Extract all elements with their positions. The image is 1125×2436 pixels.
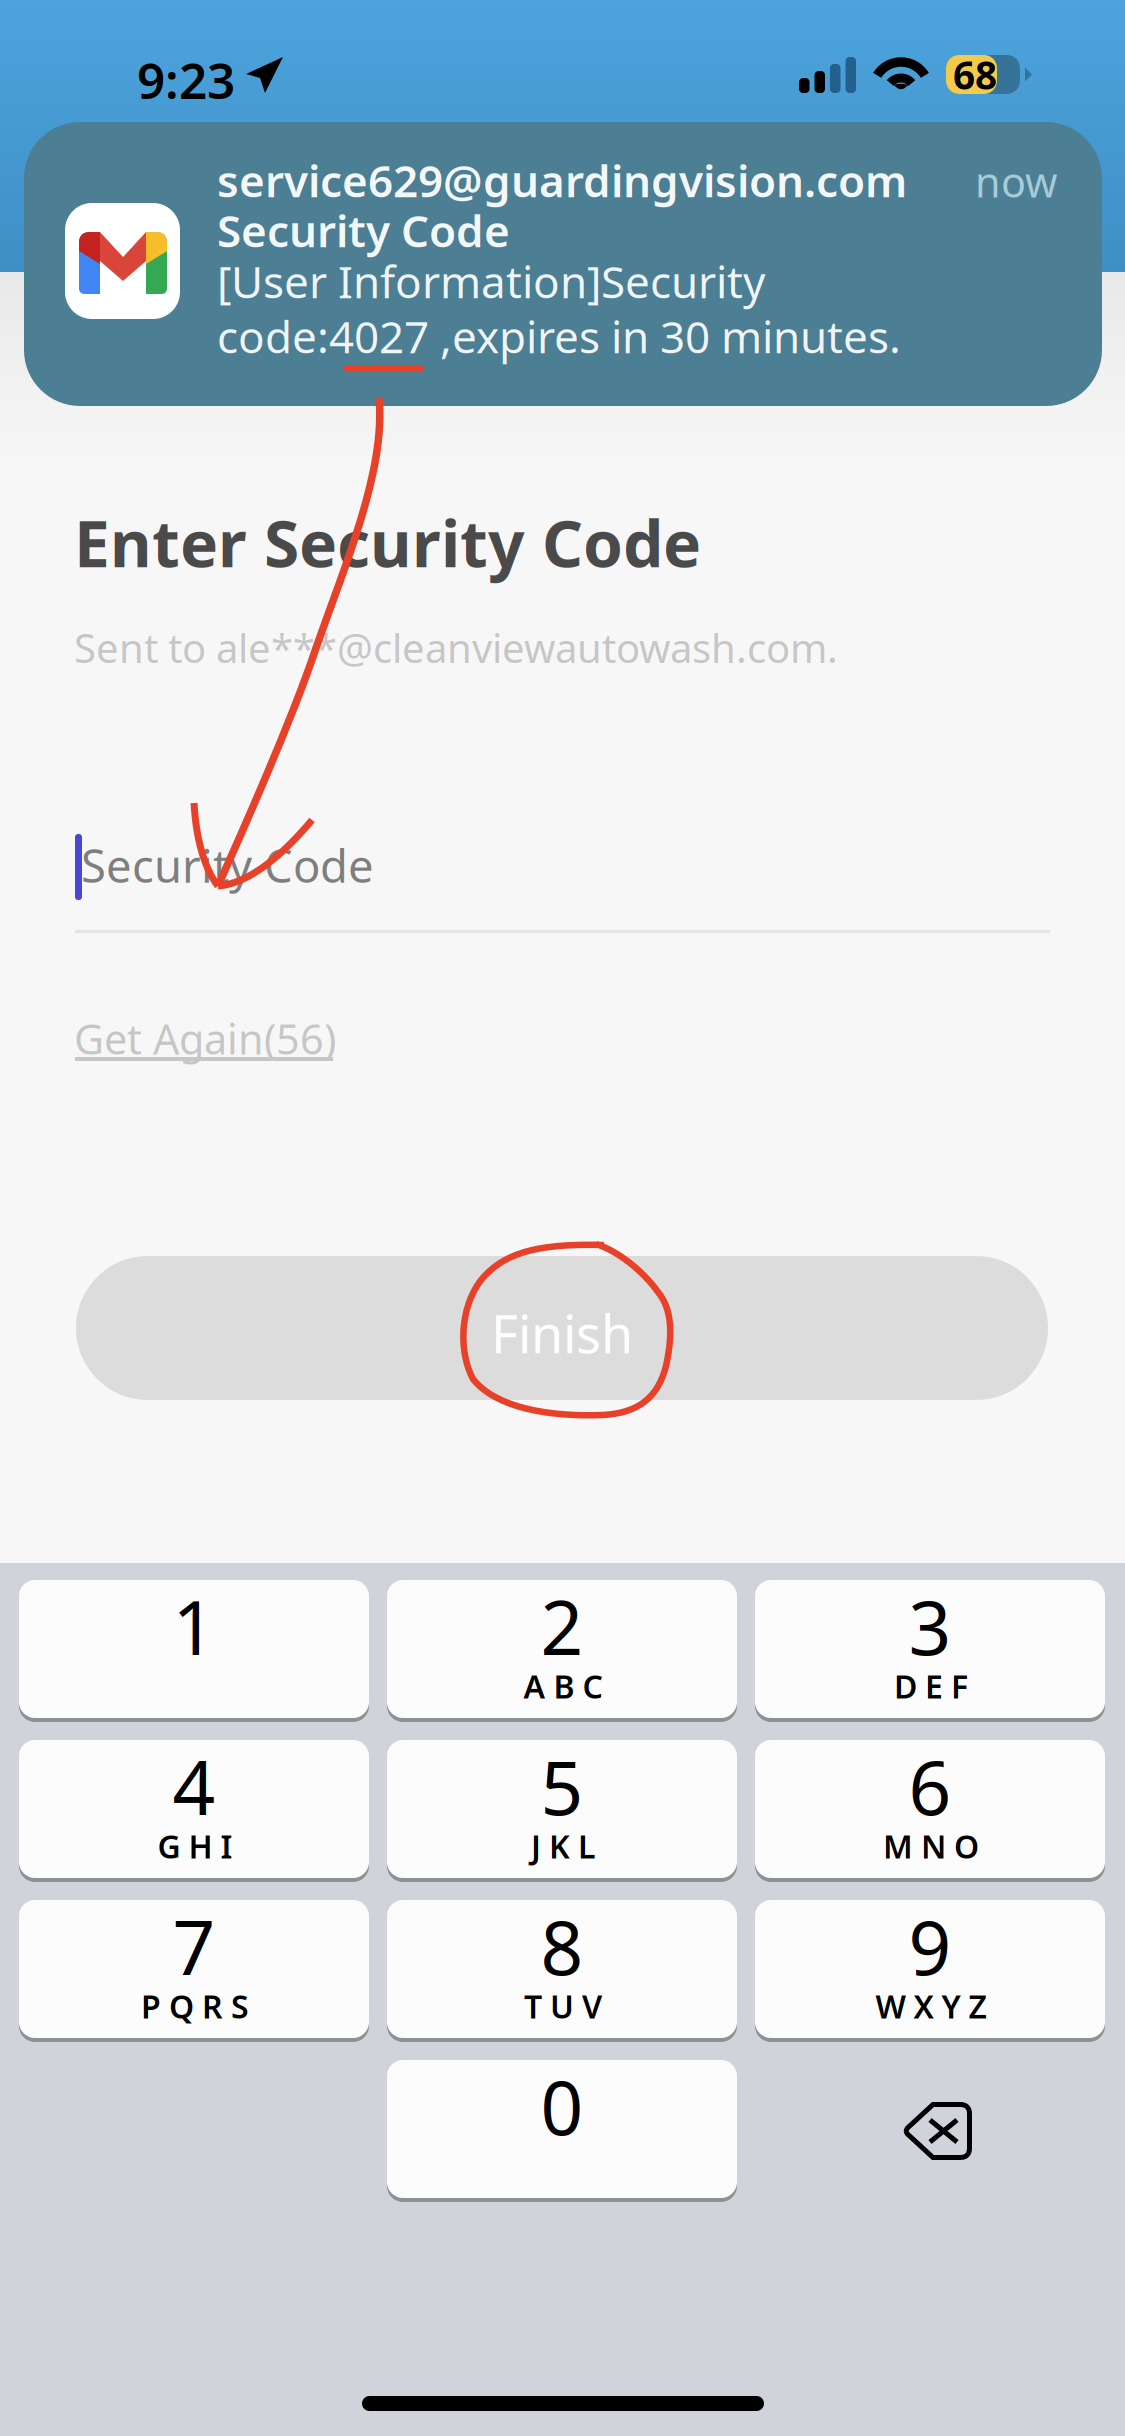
staticText: 4	[172, 1736, 215, 1836]
staticText: JKL	[531, 1825, 595, 1867]
button[interactable]: Mail notification from service629@guardi…	[24, 122, 1102, 406]
staticText: 9	[908, 1896, 951, 1996]
staticText: Security Code	[217, 201, 510, 259]
staticText: service629@guardingvision.com	[217, 151, 907, 209]
staticText: code:4027 ,expires in 30 minutes.	[217, 307, 901, 365]
staticText: 9:23	[137, 47, 235, 112]
button[interactable]: 4	[19, 1740, 369, 1882]
button[interactable]: 1	[19, 1580, 369, 1722]
staticText: Security Code	[81, 835, 374, 895]
staticText: 7	[172, 1896, 215, 1996]
staticText: 68	[953, 49, 997, 100]
button[interactable]: Security Code	[75, 820, 1050, 933]
staticText: Get Again(56)	[74, 1011, 336, 1066]
staticText: 6	[908, 1736, 951, 1836]
button[interactable]: 7	[19, 1900, 369, 2042]
staticText: 1	[172, 1576, 215, 1676]
staticText: Enter Security Code	[74, 500, 701, 585]
button[interactable]: 5	[387, 1740, 737, 1882]
staticText: 3	[908, 1576, 951, 1676]
button[interactable]: 0	[387, 2060, 737, 2202]
button[interactable]: 2	[387, 1580, 737, 1722]
staticText: MNO	[883, 1825, 979, 1867]
staticText: now	[975, 154, 1057, 209]
button[interactable]: Get Again(56)	[74, 1011, 344, 1071]
staticText: Finish	[491, 1298, 633, 1368]
staticText: 0	[540, 2056, 583, 2156]
staticText: 5	[540, 1736, 583, 1836]
staticText: ABC	[523, 1665, 602, 1707]
staticText: WXYZ	[875, 1985, 986, 2027]
button[interactable]: 8	[387, 1900, 737, 2042]
staticText: PQRS	[141, 1985, 249, 2027]
button[interactable]: 3	[755, 1580, 1105, 1722]
staticText: Sent to ale***@cleanviewautowash.com.	[74, 621, 838, 674]
staticText: 8	[540, 1896, 583, 1996]
button[interactable]: 9	[755, 1900, 1105, 2042]
button[interactable]: Finish	[76, 1256, 1048, 1400]
staticText: [User Information]Security	[217, 252, 765, 310]
staticText: DEF	[894, 1665, 968, 1707]
staticText: TUV	[524, 1985, 602, 2027]
staticText: GHI	[157, 1825, 232, 1867]
button[interactable]: Delete	[755, 2060, 1105, 2202]
staticText: 2	[540, 1576, 583, 1676]
button[interactable]: 6	[755, 1740, 1105, 1882]
